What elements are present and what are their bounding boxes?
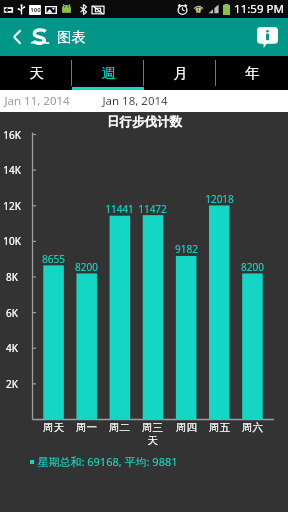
staticText: 100 xyxy=(30,6,41,14)
staticText: 8655 xyxy=(42,252,65,266)
staticText: 10K xyxy=(3,234,21,248)
staticText: 天 xyxy=(147,434,158,447)
staticText: 14K xyxy=(3,163,21,177)
staticText: 11:59 PM xyxy=(234,1,284,17)
staticText: 星期总和: 69168, 平均: 9881 xyxy=(37,454,178,469)
button[interactable]: Information xyxy=(254,24,280,50)
staticText: Jan 18, 2014 xyxy=(102,93,168,109)
staticText: 年 xyxy=(245,64,260,82)
staticText: 周一 xyxy=(76,421,97,434)
staticText: 日行步伐计数 xyxy=(107,114,182,130)
staticText: 週 xyxy=(101,64,116,82)
staticText: 周三 xyxy=(142,421,163,434)
staticText: 12018 xyxy=(205,192,234,206)
button[interactable]: 天 xyxy=(0,56,72,90)
staticText: 16K xyxy=(3,128,21,142)
staticText: 周四 xyxy=(176,421,197,434)
button[interactable]: 年 xyxy=(216,56,288,90)
staticText: 周二 xyxy=(109,421,130,434)
button[interactable]: Back xyxy=(7,22,27,52)
staticText: 周天 xyxy=(43,421,64,434)
staticText: 8K xyxy=(6,270,18,284)
button[interactable]: 週 xyxy=(72,56,144,90)
staticText: 8200 xyxy=(241,260,264,274)
staticText: 月 xyxy=(173,64,188,82)
staticText: 周五 xyxy=(209,421,230,434)
staticText: 9182 xyxy=(175,242,198,256)
staticText: 天 xyxy=(29,64,44,82)
staticText: 6K xyxy=(6,306,18,320)
button[interactable]: 月 xyxy=(144,56,216,90)
staticText: 周六 xyxy=(242,421,263,434)
staticText: 12K xyxy=(3,199,21,213)
staticText: 2K xyxy=(6,377,18,391)
staticText: 8200 xyxy=(75,260,98,274)
staticText: 图表 xyxy=(57,28,86,46)
staticText: 11441 xyxy=(105,202,134,216)
staticText: 4K xyxy=(6,341,18,355)
staticText: 11472 xyxy=(138,202,167,216)
staticText: Jan 11, 2014 xyxy=(4,93,70,109)
